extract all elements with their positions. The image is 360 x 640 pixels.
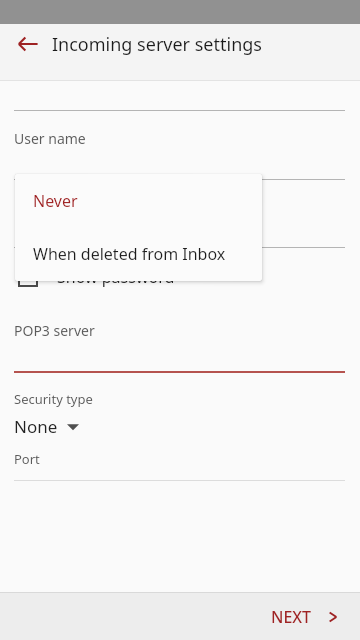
- button[interactable]: Back: [8, 24, 48, 64]
- button[interactable]: User name: [0, 111, 360, 179]
- button[interactable]: POP3 server: [0, 306, 360, 371]
- button[interactable]: Never: [15, 174, 262, 227]
- staticText: Port: [14, 450, 40, 468]
- staticText: Never: [33, 190, 78, 212]
- button[interactable]: NEXT: [259, 598, 352, 636]
- staticText: Security type: [14, 390, 93, 408]
- staticText: User name: [14, 129, 86, 148]
- staticText: When deleted from Inbox: [33, 243, 226, 265]
- button[interactable]: Password: [0, 180, 360, 247]
- button[interactable]: Security type: [0, 373, 360, 443]
- staticText: Incoming server settings: [52, 32, 262, 57]
- button[interactable]: Show password: [0, 248, 360, 306]
- staticText: Password: [14, 198, 78, 217]
- staticText: POP3 server: [14, 321, 95, 340]
- button[interactable]: Port: [0, 443, 360, 480]
- button[interactable]: When deleted from Inbox: [15, 227, 262, 281]
- staticText: None: [14, 415, 58, 438]
- staticText: NEXT: [271, 606, 312, 628]
- staticText: Show password: [57, 266, 175, 288]
